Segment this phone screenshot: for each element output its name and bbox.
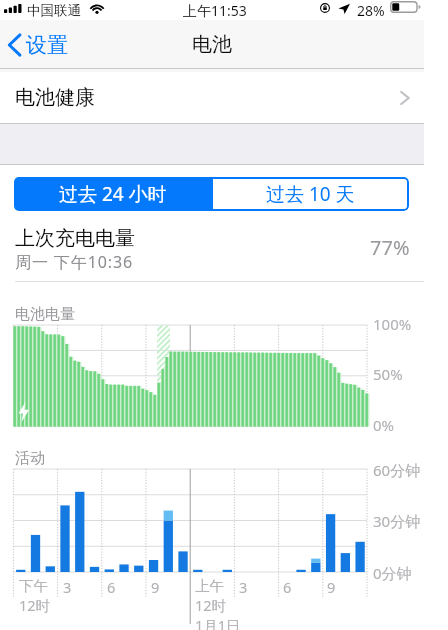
staticText: 9	[327, 577, 336, 597]
staticText: 上午11:53	[183, 1, 247, 20]
staticText: 12时	[19, 595, 51, 615]
staticText: 下午	[19, 577, 48, 595]
staticText: 中国联通	[27, 2, 81, 19]
button[interactable]: 返回设置	[8, 32, 68, 58]
button[interactable]: 电池健康	[0, 72, 424, 123]
staticText: 100%	[373, 314, 412, 334]
staticText: 电池电量	[15, 305, 75, 324]
staticText: 60分钟	[373, 460, 421, 480]
staticText: 活动	[15, 449, 45, 468]
staticText: 上午	[195, 577, 224, 595]
staticText: 设置	[26, 32, 68, 58]
staticText: 电池健康	[15, 85, 95, 110]
staticText: 1月1日	[195, 615, 241, 630]
button[interactable]: 过去 10 天	[211, 177, 409, 211]
staticText: 28%	[357, 1, 385, 20]
staticText: 9	[151, 577, 160, 597]
staticText: 30分钟	[373, 511, 421, 531]
staticText: 周一 下午10:36	[15, 251, 134, 273]
staticText: 77%	[370, 234, 410, 261]
staticText: 0分钟	[373, 563, 412, 583]
staticText: 电池	[192, 32, 232, 57]
button[interactable]: 过去 24 小时	[14, 177, 211, 211]
staticText: 上次充电电量	[15, 226, 135, 251]
staticText: 12时	[195, 595, 227, 615]
staticText: 3	[63, 577, 72, 597]
staticText: 50%	[373, 364, 403, 384]
staticText: 6	[283, 577, 292, 597]
staticText: 过去 24 小时	[59, 181, 167, 207]
staticText: 3	[239, 577, 248, 597]
staticText: 6	[107, 577, 116, 597]
staticText: 0%	[373, 415, 395, 435]
staticText: 过去 10 天	[266, 181, 355, 207]
